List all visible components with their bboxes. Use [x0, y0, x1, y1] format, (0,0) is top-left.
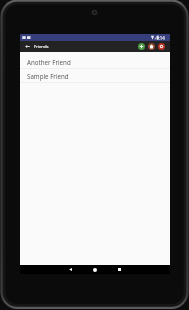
button[interactable]: Navigate up [20, 41, 34, 52]
button[interactable]: Recent apps [113, 265, 125, 274]
button[interactable]: Home [148, 43, 155, 50]
button[interactable]: Another Friend [20, 55, 170, 69]
button[interactable]: Add friend [138, 43, 145, 50]
button[interactable]: Back [64, 265, 76, 274]
button[interactable]: Home [89, 265, 101, 274]
button[interactable]: Record [158, 43, 165, 50]
staticText: Friends [34, 44, 49, 50]
staticText: Another Friend [27, 58, 71, 66]
button[interactable]: Sample Friend [20, 69, 170, 83]
staticText: 1:14 [156, 35, 165, 41]
staticText: Sample Friend [27, 72, 69, 80]
